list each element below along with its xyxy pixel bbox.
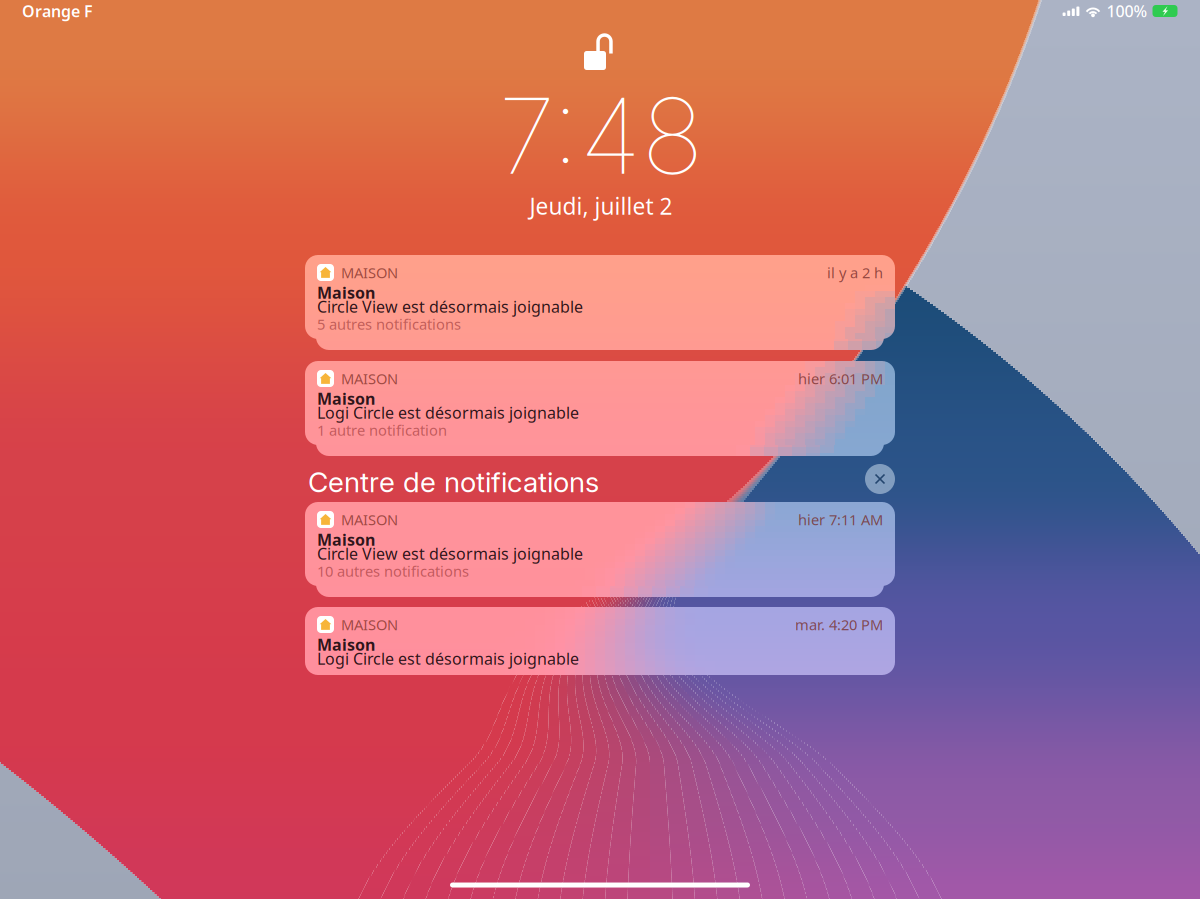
staticText: MAISON	[341, 615, 398, 634]
staticText: il y a 2 h	[827, 263, 883, 282]
button[interactable]: Fermer	[865, 464, 895, 494]
button[interactable]: MAISON	[305, 255, 895, 339]
staticText: Orange F	[22, 0, 93, 22]
staticText: hier 7:11 AM	[798, 510, 883, 529]
staticText: MAISON	[341, 263, 398, 282]
staticText: Maison	[317, 529, 375, 550]
button[interactable]: MAISON	[305, 502, 895, 586]
staticText: 1 autre notification	[317, 420, 447, 440]
staticText: mar. 4:20 PM	[795, 615, 883, 634]
staticText: Circle View est désormais joignable	[317, 543, 583, 564]
button[interactable]: MAISON	[305, 361, 895, 445]
staticText: hier 6:01 PM	[798, 369, 883, 388]
staticText: MAISON	[341, 510, 398, 529]
staticText: 5 autres notifications	[317, 314, 461, 334]
staticText: Maison	[317, 282, 375, 303]
button[interactable]: MAISON	[305, 607, 895, 675]
staticText: Logi Circle est désormais joignable	[317, 648, 579, 669]
staticText: Circle View est désormais joignable	[317, 296, 583, 317]
staticText: 10 autres notifications	[317, 561, 469, 581]
staticText: Maison	[317, 634, 375, 655]
staticText: Jeudi, juillet 2	[529, 191, 672, 221]
staticText: 7:48	[498, 73, 703, 199]
staticText: Logi Circle est désormais joignable	[317, 402, 579, 423]
staticText: 100%	[1106, 0, 1147, 22]
staticText: Maison	[317, 388, 375, 409]
staticText: Centre de notifications	[308, 465, 599, 499]
staticText: MAISON	[341, 369, 398, 388]
